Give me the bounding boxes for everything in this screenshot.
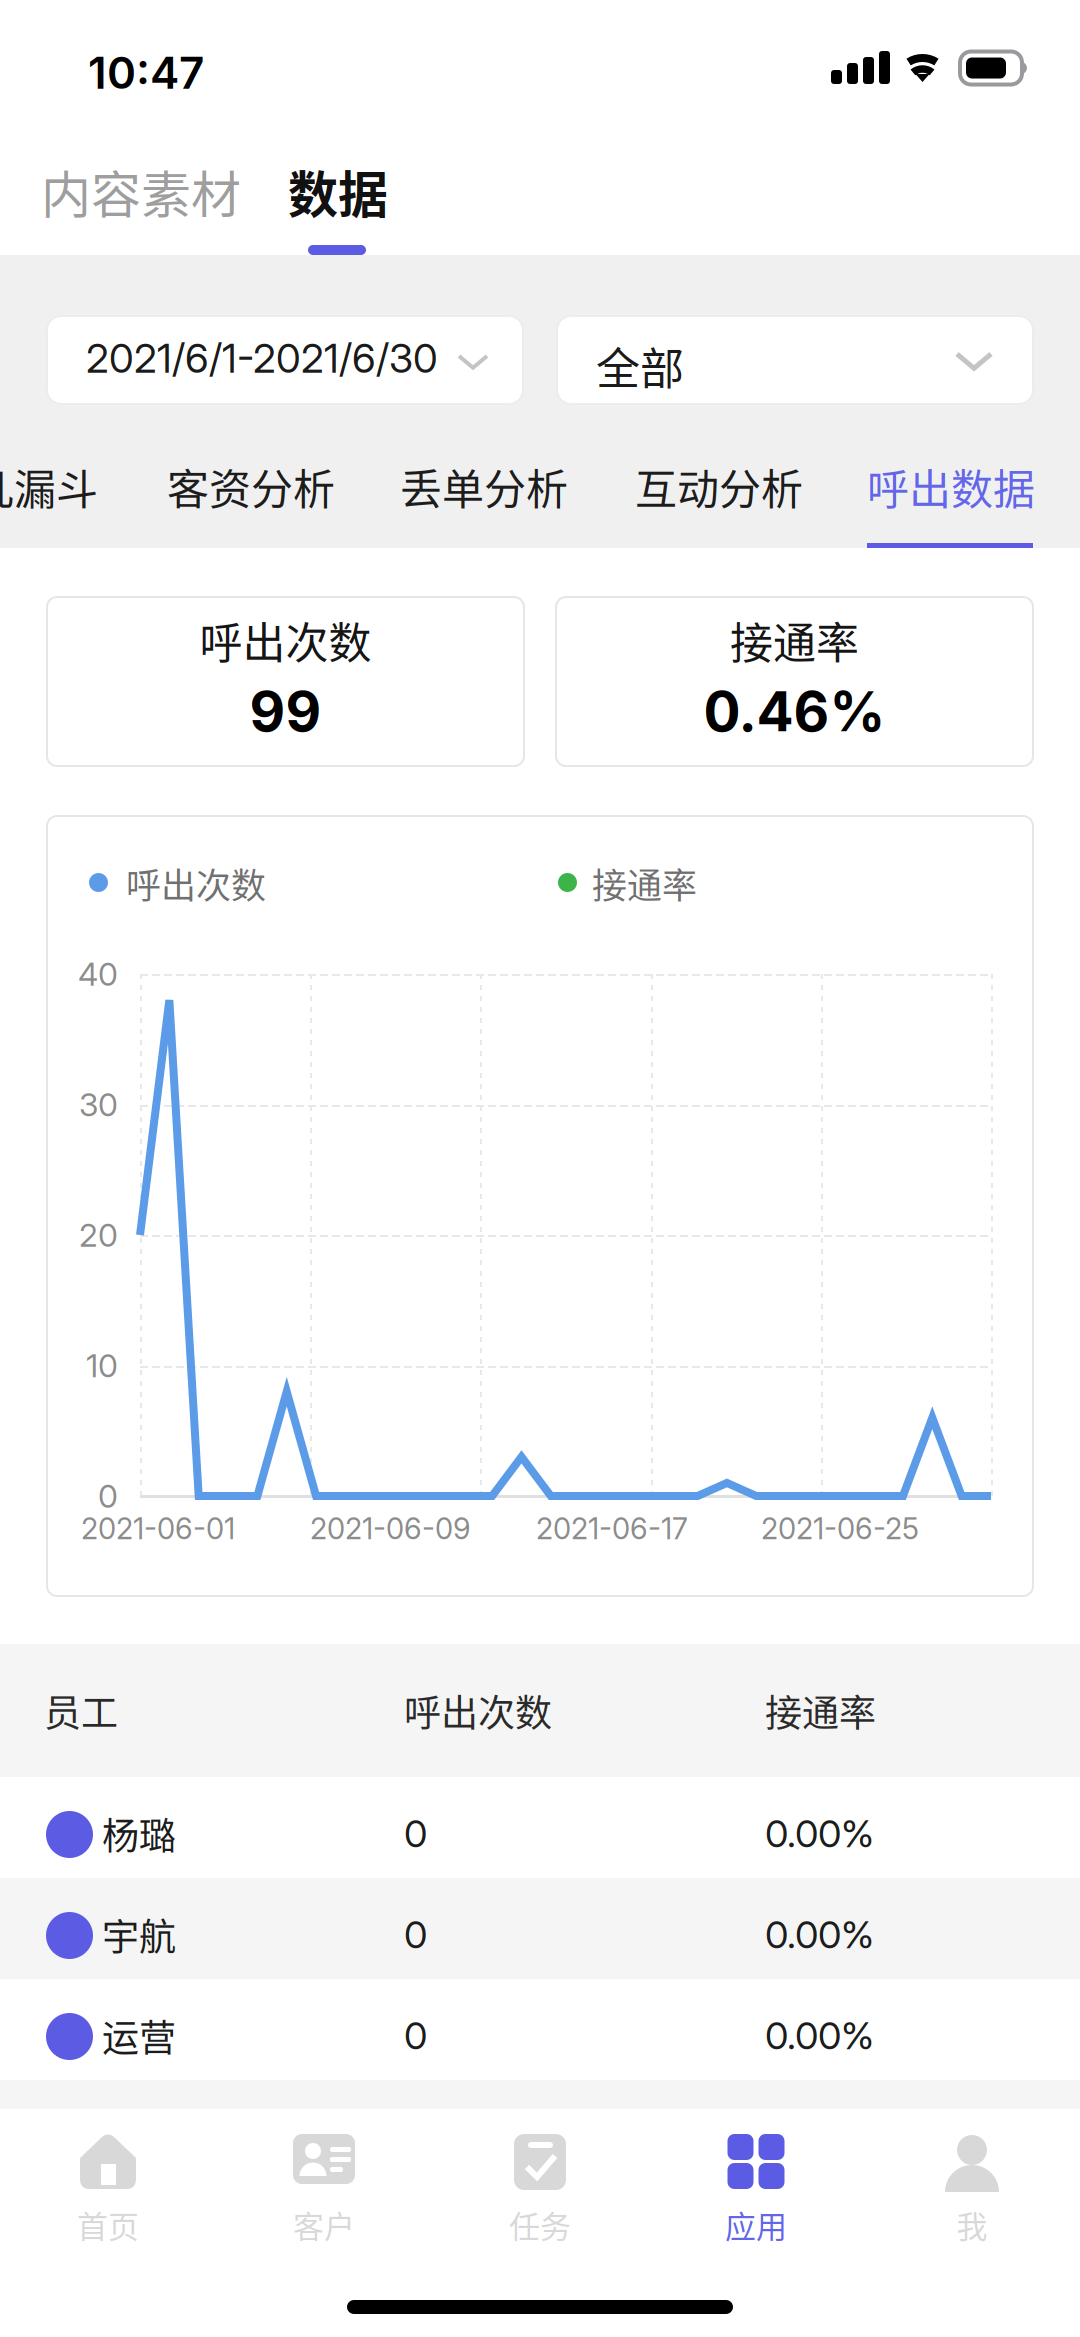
staticText: 10 bbox=[86, 1346, 118, 1385]
button[interactable]: 呼出数据 bbox=[868, 440, 1034, 555]
staticText: 客户 bbox=[293, 2202, 355, 2247]
staticText: 0 bbox=[404, 1911, 427, 1957]
staticText: 呼出次数 bbox=[404, 1684, 552, 1737]
button[interactable]: 我 bbox=[864, 2109, 1080, 2259]
staticText: 数据 bbox=[288, 155, 388, 227]
button[interactable]: 宇航 bbox=[0, 1878, 1080, 1979]
staticText: 2021-06-17 bbox=[536, 1511, 688, 1546]
staticText: 运营 bbox=[102, 2009, 176, 2062]
button[interactable]: 运营 bbox=[0, 1979, 1080, 2080]
button[interactable]: 几漏斗 bbox=[0, 440, 98, 555]
staticText: 杨璐 bbox=[102, 1807, 176, 1860]
staticText: 接通率 bbox=[592, 858, 697, 909]
staticText: 99 bbox=[249, 678, 321, 744]
staticText: 0.00% bbox=[765, 1810, 874, 1856]
button[interactable]: 数据 bbox=[288, 140, 408, 255]
staticText: 我 bbox=[956, 2202, 987, 2247]
staticText: 呼出数据 bbox=[867, 456, 1035, 517]
staticText: 20 bbox=[79, 1216, 118, 1254]
staticText: 2021-06-09 bbox=[310, 1511, 471, 1546]
staticText: 2021-06-25 bbox=[761, 1511, 919, 1546]
staticText: 0 bbox=[404, 2012, 427, 2058]
staticText: 几漏斗 bbox=[0, 456, 98, 517]
staticText: 内容素材 bbox=[41, 155, 241, 227]
staticText: 0.00% bbox=[765, 2012, 874, 2058]
staticText: 呼出次数 bbox=[126, 858, 266, 909]
staticText: 任务 bbox=[509, 2202, 571, 2247]
staticText: 30 bbox=[79, 1085, 118, 1124]
staticText: 0 bbox=[98, 1477, 118, 1515]
staticText: 宇航 bbox=[102, 1908, 176, 1961]
button[interactable]: 应用 bbox=[648, 2109, 864, 2259]
staticText: 2021/6/1-2021/6/30 bbox=[86, 334, 438, 382]
button[interactable]: 任务 bbox=[432, 2109, 648, 2259]
staticText: 0 bbox=[404, 1810, 427, 1856]
staticText: 首页 bbox=[77, 2202, 139, 2247]
staticText: 接通率 bbox=[730, 609, 859, 671]
staticText: 丢单分析 bbox=[400, 456, 568, 517]
staticText: 接通率 bbox=[765, 1684, 876, 1737]
staticText: 客资分析 bbox=[167, 456, 335, 517]
staticText: 40 bbox=[78, 955, 118, 993]
staticText: 员工 bbox=[44, 1684, 118, 1737]
staticText: 互动分析 bbox=[635, 456, 803, 517]
staticText: 应用 bbox=[725, 2202, 787, 2247]
button[interactable]: 客户 bbox=[216, 2109, 432, 2259]
button[interactable]: 2021/6/1-2021/6/30 bbox=[47, 316, 523, 404]
button[interactable]: 杨璐 bbox=[0, 1777, 1080, 1878]
button[interactable]: 全部 bbox=[557, 316, 1033, 404]
staticText: 2021-06-01 bbox=[81, 1511, 235, 1546]
staticText: 10:47 bbox=[88, 46, 204, 99]
button[interactable]: 互动分析 bbox=[636, 440, 802, 555]
button[interactable]: 内容素材 bbox=[41, 140, 241, 255]
button[interactable]: 客资分析 bbox=[168, 440, 334, 555]
staticText: 0.00% bbox=[765, 1911, 874, 1957]
staticText: 0.46% bbox=[703, 678, 885, 744]
staticText: 呼出次数 bbox=[199, 609, 371, 671]
staticText: 全部 bbox=[596, 334, 684, 398]
button[interactable]: 首页 bbox=[0, 2109, 216, 2259]
button[interactable]: 丢单分析 bbox=[401, 440, 567, 555]
